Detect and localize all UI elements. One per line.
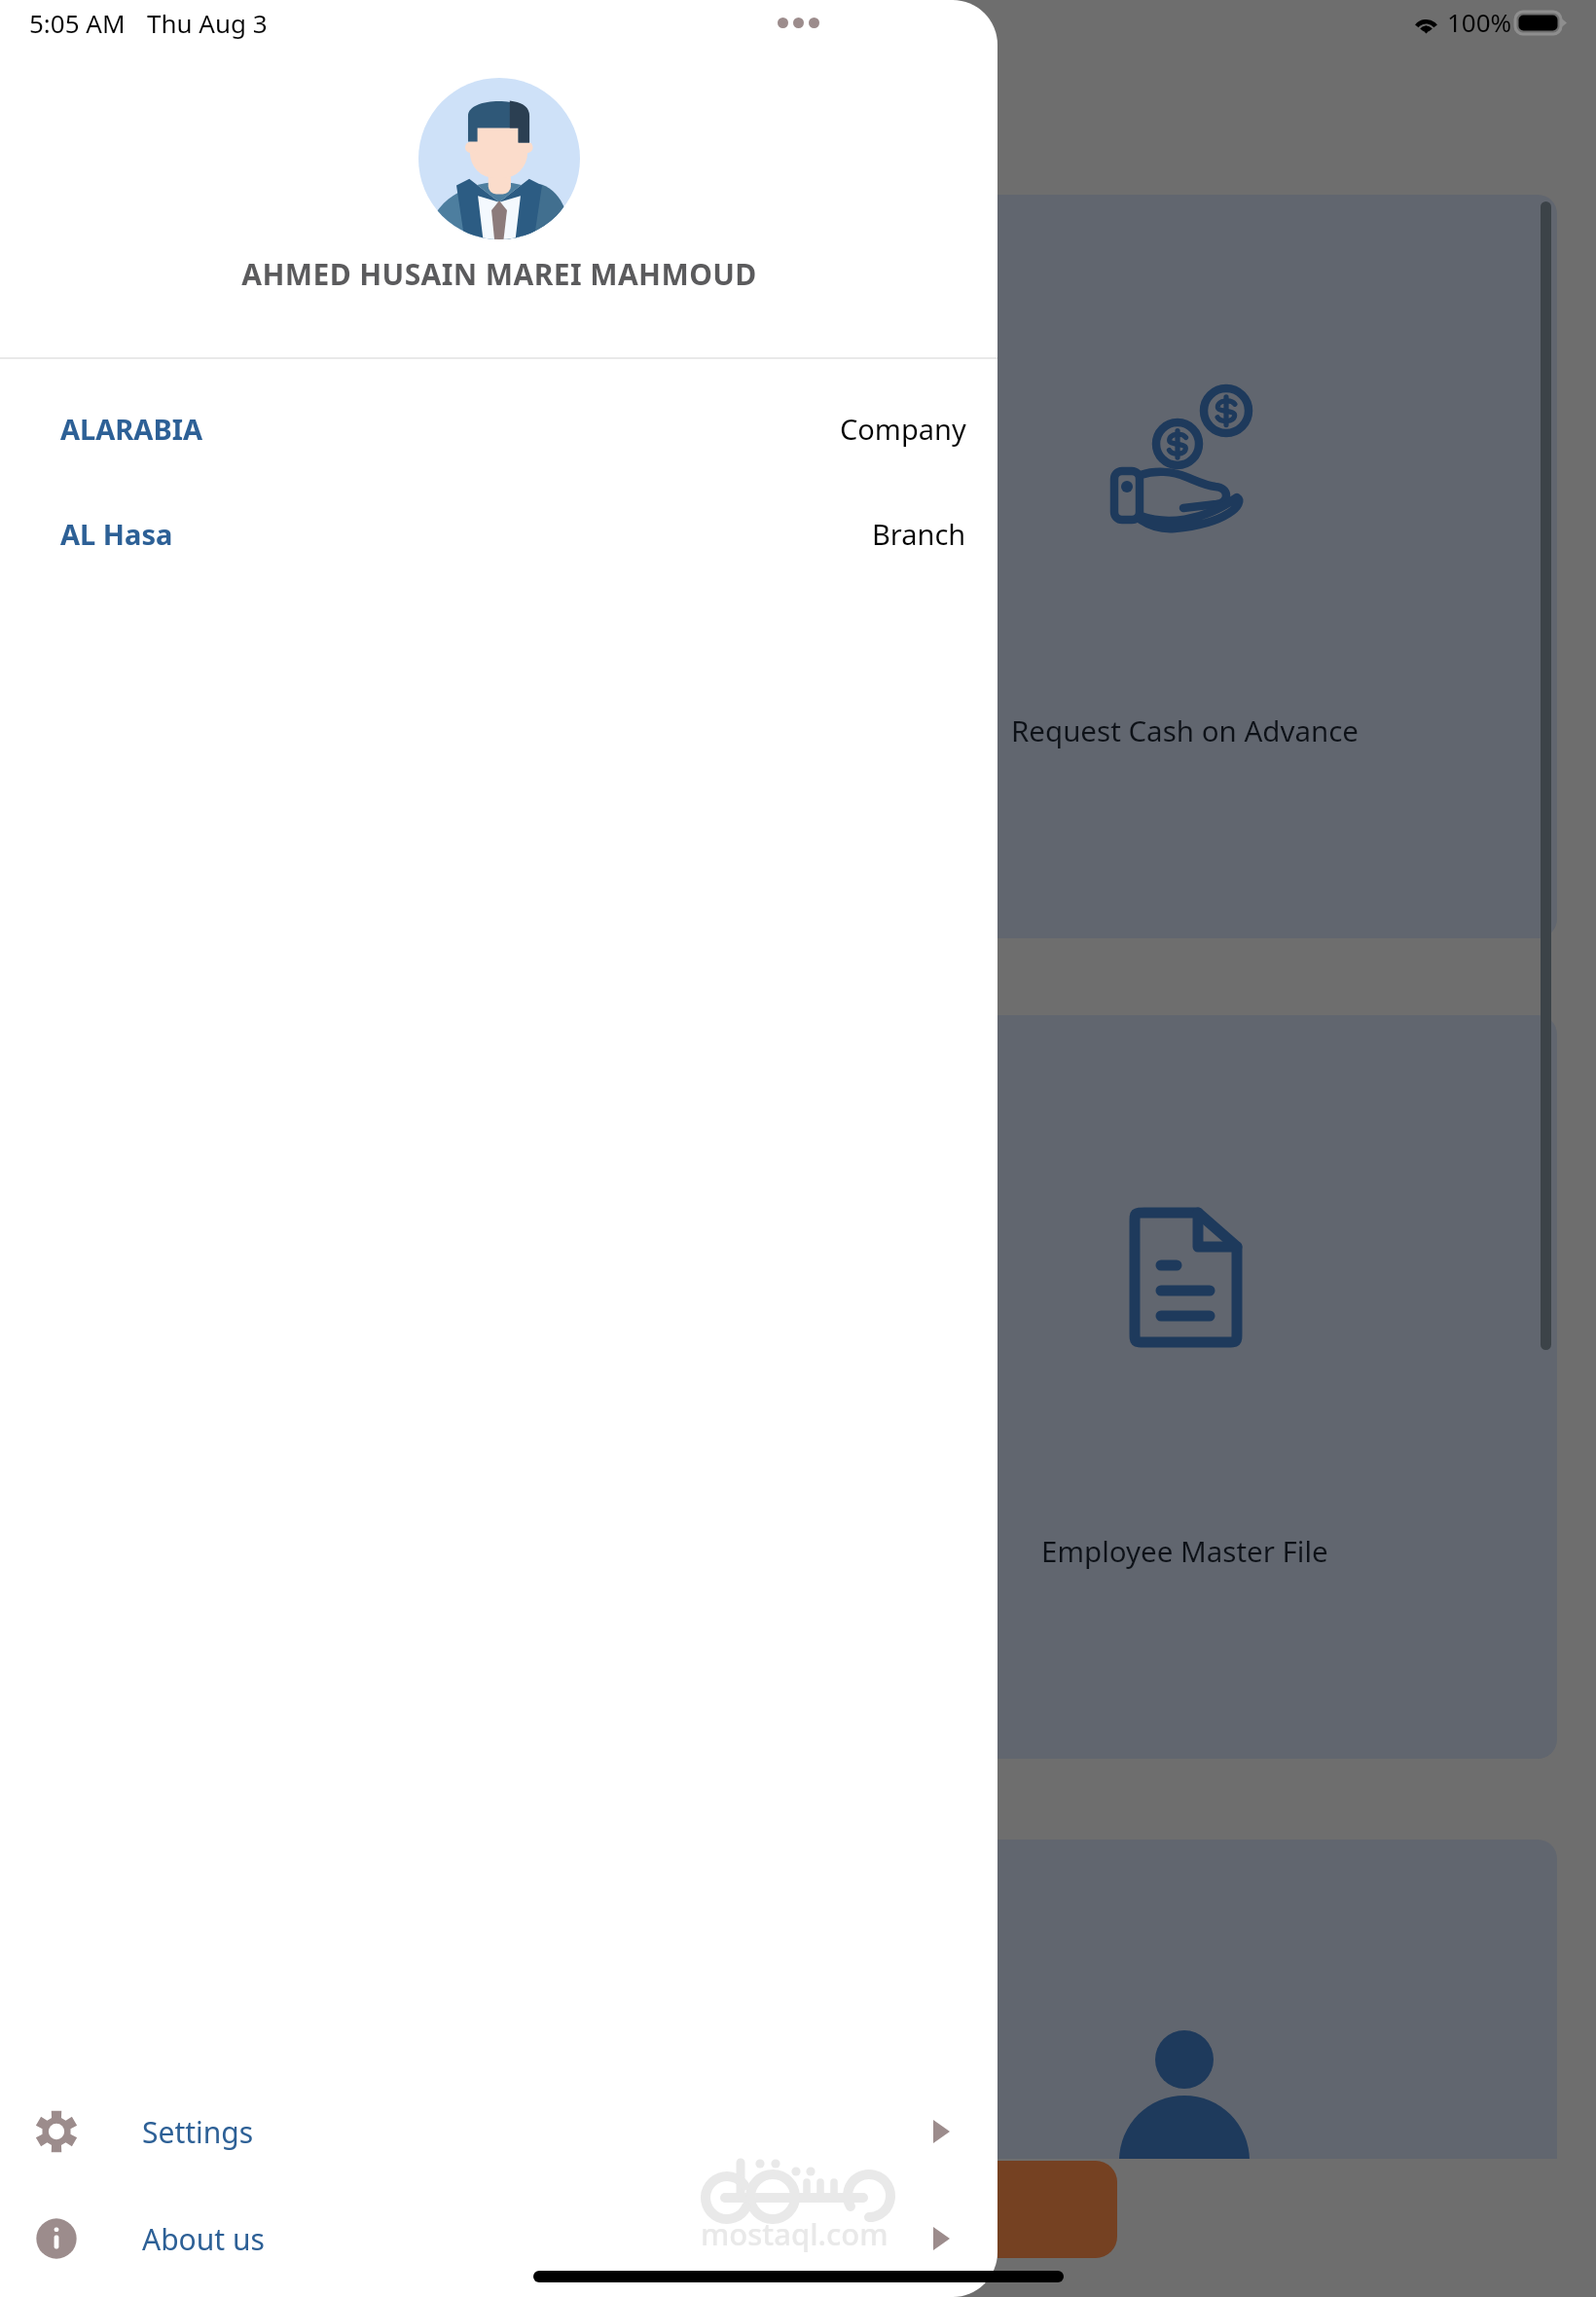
- staticText: Employee Master File: [1041, 1531, 1328, 1570]
- staticText: Branch: [872, 515, 966, 553]
- button[interactable]: About us: [0, 2198, 997, 2279]
- staticText: About us: [142, 2219, 265, 2259]
- staticText: 100%: [1447, 5, 1512, 39]
- staticText: ALARABIA: [60, 410, 203, 448]
- staticText: Settings: [142, 2112, 254, 2152]
- button[interactable]: AL Hasa: [0, 480, 997, 587]
- staticText: 5:05 AM: [29, 6, 126, 40]
- button[interactable]: ALARABIA: [0, 375, 997, 482]
- button[interactable]: Request Cash on Advance: [813, 195, 1557, 938]
- button[interactable]: More options: [766, 7, 831, 39]
- staticText: Thu Aug 3: [147, 6, 268, 40]
- staticText: AL Hasa: [60, 515, 173, 553]
- button[interactable]: Employee Master File: [813, 1015, 1557, 1759]
- button[interactable]: Employee Self Service: [813, 1840, 1557, 2159]
- staticText: Request Cash on Advance: [1011, 711, 1359, 749]
- staticText: Company: [840, 410, 966, 448]
- staticText: mostaql.com: [701, 2213, 889, 2254]
- button[interactable]: Settings: [0, 2091, 997, 2172]
- button[interactable]: Add: [997, 2161, 1117, 2258]
- staticText: AHMED HUSAIN MAREI MAHMOUD: [241, 254, 757, 294]
